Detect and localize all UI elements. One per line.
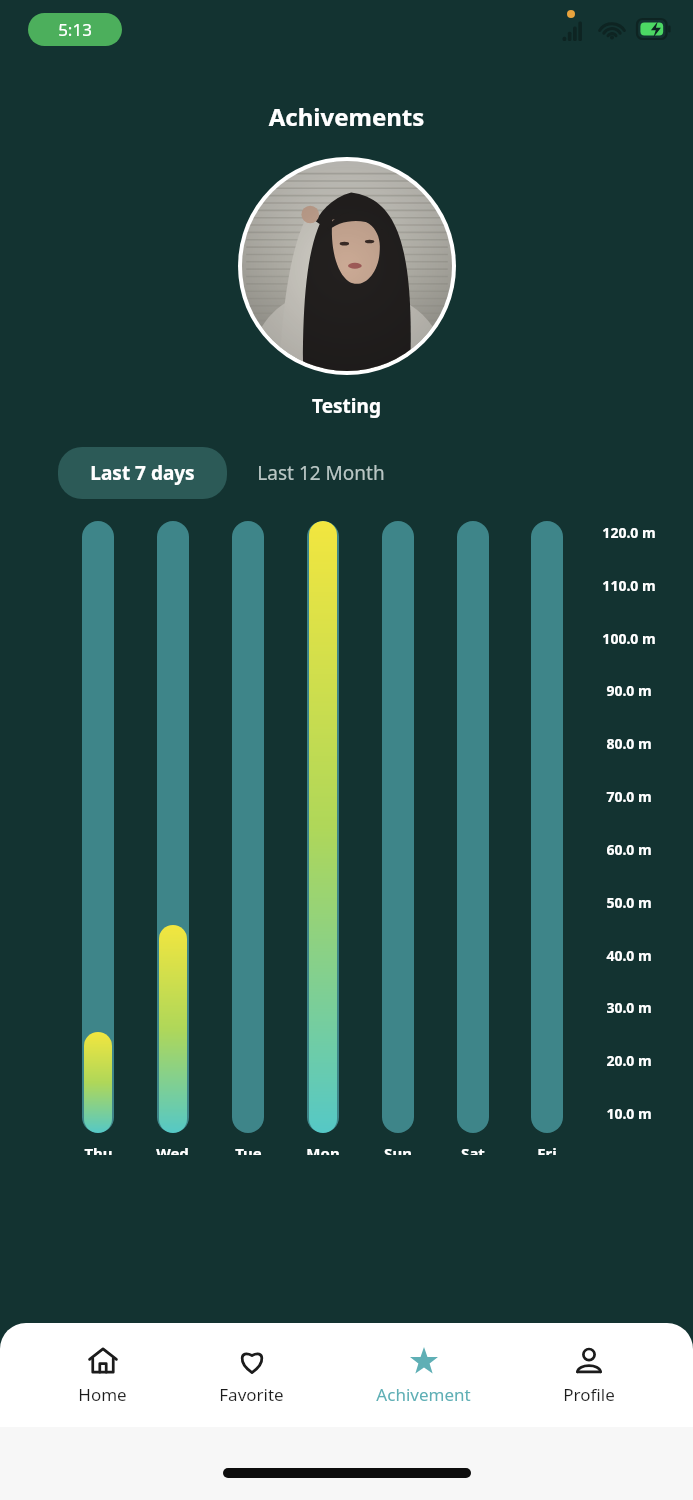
button[interactable]: Home — [64, 1339, 141, 1412]
button[interactable]: Fri — [531, 521, 563, 1155]
staticText: Home — [78, 1383, 127, 1406]
staticText: 20.0 m — [587, 1051, 671, 1070]
button[interactable]: Favorite — [205, 1339, 298, 1412]
button[interactable]: Thu — [82, 521, 114, 1155]
staticText: Wed — [156, 1143, 189, 1155]
staticText: 120.0 m — [587, 523, 671, 542]
button[interactable]: Wed — [156, 521, 189, 1155]
staticText: 80.0 m — [587, 734, 671, 753]
button[interactable]: Last 12 Month — [227, 447, 415, 499]
button[interactable]: Tue — [232, 521, 264, 1155]
button[interactable]: Last 7 days — [58, 447, 227, 499]
button[interactable]: Sun — [382, 521, 414, 1155]
staticText: 30.0 m — [587, 998, 671, 1017]
staticText: Profile — [563, 1383, 615, 1406]
button[interactable]: Mon — [306, 521, 340, 1155]
button[interactable]: Profile — [549, 1339, 629, 1412]
staticText: Achivement — [376, 1383, 471, 1406]
button[interactable]: Sat — [457, 521, 489, 1155]
staticText: 60.0 m — [587, 840, 671, 859]
staticText: Tue — [235, 1143, 262, 1155]
staticText: 10.0 m — [587, 1104, 671, 1123]
staticText: 50.0 m — [587, 893, 671, 912]
staticText: Testing — [0, 393, 693, 419]
staticText: 5:13 — [58, 18, 92, 41]
staticText: Achivements — [0, 100, 693, 133]
staticText: Sat — [461, 1143, 485, 1155]
staticText: Last 12 Month — [257, 460, 385, 486]
staticText: 110.0 m — [587, 576, 671, 595]
button[interactable]: Achivement — [362, 1339, 485, 1412]
staticText: 90.0 m — [587, 681, 671, 700]
staticText: Thu — [84, 1143, 113, 1155]
staticText: Last 7 days — [90, 460, 195, 486]
staticText: Mon — [306, 1143, 340, 1155]
staticText: Favorite — [219, 1383, 284, 1406]
staticText: Fri — [537, 1143, 557, 1155]
staticText: 100.0 m — [587, 629, 671, 648]
staticText: 40.0 m — [587, 946, 671, 965]
staticText: Sun — [384, 1143, 412, 1155]
staticText: 70.0 m — [587, 787, 671, 806]
